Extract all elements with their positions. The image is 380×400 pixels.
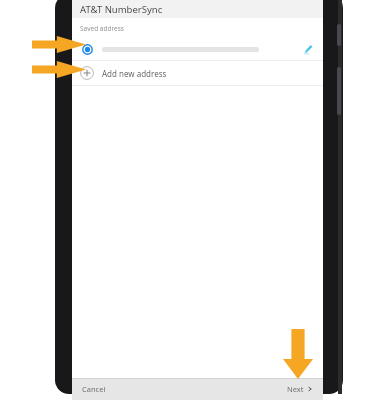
staticText: Next [287, 384, 304, 394]
button[interactable]: Cancel [82, 384, 106, 394]
button[interactable]: Next [287, 384, 313, 394]
button[interactable]: Edit address [72, 38, 323, 60]
staticText: Add new address [102, 68, 167, 79]
button[interactable]: Add new address [72, 61, 323, 85]
staticText: AT&T NumberSync [80, 3, 163, 16]
staticText: Cancel [82, 384, 106, 394]
button[interactable]: Edit address [299, 40, 317, 58]
staticText: Saved address [80, 24, 124, 33]
